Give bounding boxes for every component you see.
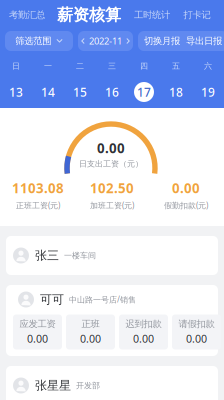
staticText: 0.00 bbox=[133, 332, 154, 346]
button[interactable]: 切换月报 bbox=[138, 31, 224, 51]
button[interactable]: 薪资核算 bbox=[51, 4, 127, 26]
staticText: 开发部 bbox=[76, 381, 100, 390]
staticText: 加班工资(元) bbox=[90, 200, 134, 211]
staticText: 一楼车间 bbox=[64, 251, 96, 260]
button[interactable]: 19 bbox=[192, 82, 224, 102]
staticText: 16 bbox=[105, 84, 119, 100]
staticText: 日支出工资（元） bbox=[79, 159, 143, 169]
staticText: 19 bbox=[201, 84, 215, 100]
staticText: 四 bbox=[140, 61, 148, 71]
staticText: 0.00 bbox=[80, 332, 101, 346]
staticText: 六 bbox=[204, 61, 212, 71]
button[interactable]: 2022-11 bbox=[78, 31, 133, 51]
staticText: 假勤扣款(元) bbox=[164, 200, 208, 211]
staticText: 张星星 bbox=[35, 378, 71, 393]
button[interactable]: 考勤汇总 bbox=[3, 4, 51, 26]
staticText: 应发工资 bbox=[19, 318, 55, 330]
staticText: 0.00 bbox=[186, 332, 207, 346]
staticText: 五 bbox=[172, 61, 180, 71]
button[interactable]: 15 bbox=[64, 82, 96, 102]
button[interactable]: 17 bbox=[128, 82, 160, 102]
staticText: 张三 bbox=[35, 248, 59, 263]
staticText: 可可 bbox=[40, 292, 64, 307]
staticText: 考勤汇总 bbox=[9, 9, 45, 21]
button[interactable]: 筛选范围 bbox=[5, 31, 73, 51]
button[interactable]: 16 bbox=[96, 82, 128, 102]
staticText: 正班工资(元) bbox=[16, 200, 60, 211]
staticText: 三 bbox=[108, 61, 116, 71]
staticText: 切换月报 bbox=[144, 35, 180, 47]
staticText: 102.50 bbox=[90, 179, 134, 197]
button[interactable]: 张三 bbox=[6, 236, 218, 275]
button[interactable]: 打卡记 bbox=[177, 4, 217, 26]
button[interactable]: 张星星 bbox=[6, 366, 218, 400]
staticText: 迟到扣款 bbox=[125, 318, 161, 330]
staticText: 1103.08 bbox=[12, 179, 64, 197]
staticText: 13 bbox=[9, 84, 23, 100]
staticText: 17 bbox=[137, 84, 151, 100]
staticText: 正班 bbox=[81, 318, 99, 330]
staticText: 筛选范围 bbox=[15, 35, 51, 47]
staticText: 请假扣款 bbox=[178, 318, 214, 330]
staticText: 0.00 bbox=[172, 179, 200, 197]
staticText: 薪资核算 bbox=[57, 5, 121, 25]
staticText: 18 bbox=[169, 84, 183, 100]
button[interactable]: 18 bbox=[160, 82, 192, 102]
staticText: 15 bbox=[73, 84, 87, 100]
staticText: 一 bbox=[44, 61, 52, 71]
staticText: 二 bbox=[76, 61, 84, 71]
button[interactable]: 14 bbox=[32, 82, 64, 102]
staticText: 0.00 bbox=[27, 332, 48, 346]
staticText: 中山路一号店/销售 bbox=[69, 294, 136, 305]
staticText: 2022-11 bbox=[89, 35, 122, 47]
staticText: 导出日报 bbox=[186, 35, 222, 47]
staticText: 日 bbox=[12, 61, 20, 71]
button[interactable]: 13 bbox=[0, 82, 32, 102]
staticText: 14 bbox=[41, 84, 55, 100]
staticText: 0.00 bbox=[97, 139, 125, 157]
button[interactable]: 可可 bbox=[6, 285, 218, 356]
staticText: 工时统计 bbox=[134, 9, 170, 21]
staticText: 打卡记 bbox=[183, 9, 210, 21]
button[interactable]: 工时统计 bbox=[127, 4, 177, 26]
